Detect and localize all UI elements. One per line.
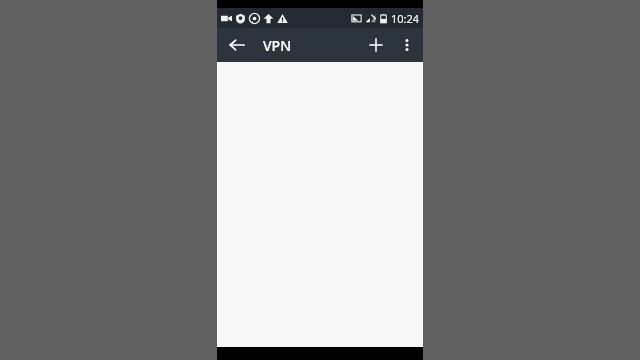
staticText: VPN [263,36,292,55]
button[interactable]: Add VPN profile [363,32,389,58]
button[interactable]: More options [395,33,419,57]
button[interactable]: Back [224,32,250,58]
staticText: 10:24 [391,11,420,26]
